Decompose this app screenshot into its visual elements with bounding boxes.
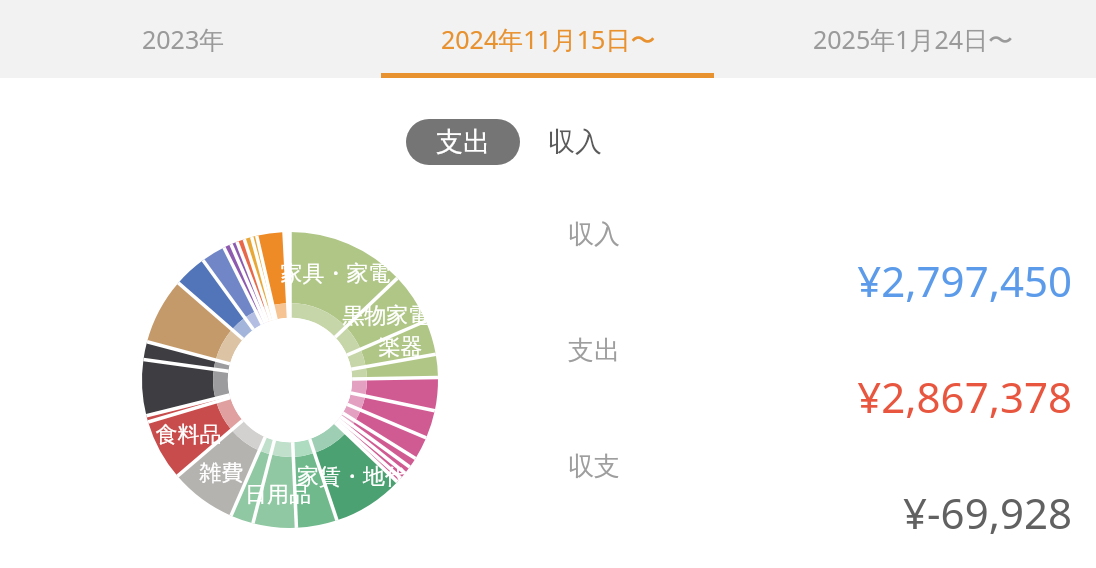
button[interactable]: 支出カテゴリ円グラフ bbox=[142, 232, 438, 528]
staticText: 2023年 bbox=[142, 22, 225, 56]
button[interactable]: 支出 bbox=[560, 326, 1072, 436]
staticText: ¥2,867,378 bbox=[857, 368, 1072, 425]
button[interactable]: 支出 bbox=[406, 119, 520, 165]
staticText: 2024年11月15日〜 bbox=[441, 22, 656, 56]
button[interactable]: 2023年 bbox=[0, 0, 366, 78]
button[interactable]: 2025年1月24日〜 bbox=[731, 0, 1096, 78]
staticText: 収入 bbox=[548, 125, 602, 159]
staticText: ¥-69,928 bbox=[903, 484, 1072, 541]
staticText: 2025年1月24日〜 bbox=[813, 22, 1014, 56]
staticText: 収支 bbox=[568, 450, 620, 483]
staticText: 支出 bbox=[568, 334, 620, 367]
button[interactable]: 2024年11月15日〜 bbox=[366, 0, 731, 78]
staticText: 支出 bbox=[436, 125, 490, 159]
staticText: 収入 bbox=[568, 218, 620, 251]
button[interactable]: 収支 bbox=[560, 442, 1072, 552]
button[interactable]: 収入 bbox=[560, 210, 1072, 320]
staticText: ¥2,797,450 bbox=[857, 252, 1072, 309]
button[interactable]: 収入 bbox=[520, 119, 630, 165]
